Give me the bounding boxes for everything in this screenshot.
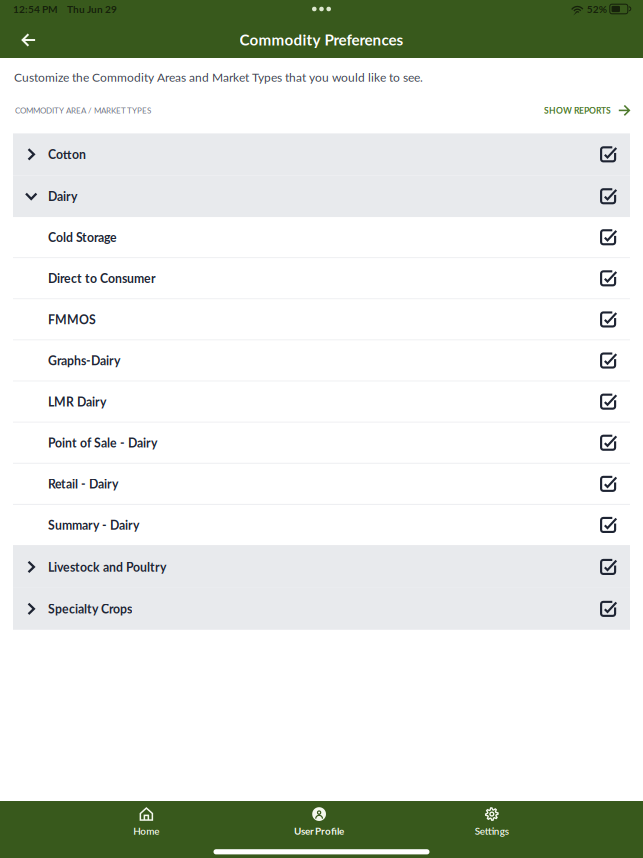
button[interactable]: Livestock and Poultry xyxy=(13,546,630,588)
staticText: Commodity Preferences xyxy=(239,30,403,49)
staticText: Settings xyxy=(475,825,509,837)
button[interactable]: Cotton xyxy=(13,133,630,175)
button[interactable]: Settings xyxy=(405,807,578,837)
button[interactable]: Home xyxy=(60,807,233,837)
staticText: 12:54 PM xyxy=(13,3,58,15)
button[interactable]: Dairy xyxy=(13,175,630,217)
button[interactable]: FMMOS xyxy=(13,299,630,340)
staticText: Customize the Commodity Areas and Market… xyxy=(14,70,423,84)
button[interactable]: LMR Dairy xyxy=(13,382,630,423)
staticText: Thu Jun 29 xyxy=(67,3,117,15)
staticText: User Profile xyxy=(294,825,344,837)
staticText: 52% xyxy=(587,3,607,15)
staticText: Home xyxy=(133,825,159,837)
button[interactable]: Summary - Dairy xyxy=(13,505,630,546)
staticText: Dairy xyxy=(48,189,77,204)
staticText: Livestock and Poultry xyxy=(48,560,166,574)
button[interactable]: SHOW REPORTS xyxy=(544,104,630,116)
staticText: COMMODITY AREA / MARKET TYPES xyxy=(15,106,151,115)
staticText: FMMOS xyxy=(48,312,96,327)
staticText: Specialty Crops xyxy=(48,601,132,616)
staticText: Summary - Dairy xyxy=(48,518,139,532)
button[interactable]: Back xyxy=(0,18,50,58)
button[interactable]: User Profile xyxy=(233,807,405,837)
staticText: Cold Storage xyxy=(48,230,117,245)
staticText: Point of Sale - Dairy xyxy=(48,435,157,450)
staticText: Retail - Dairy xyxy=(48,476,118,491)
staticText: Graphs-Dairy xyxy=(48,353,120,368)
button[interactable]: Direct to Consumer xyxy=(13,258,630,299)
staticText: LMR Dairy xyxy=(48,394,106,409)
button[interactable]: Retail - Dairy xyxy=(13,464,630,505)
staticText: Cotton xyxy=(48,147,86,162)
staticText: Direct to Consumer xyxy=(48,271,156,286)
staticText: SHOW REPORTS xyxy=(544,105,611,115)
button[interactable]: Point of Sale - Dairy xyxy=(13,423,630,464)
button[interactable]: Specialty Crops xyxy=(13,588,630,630)
button[interactable]: Graphs-Dairy xyxy=(13,340,630,382)
button[interactable]: Cold Storage xyxy=(13,217,630,258)
